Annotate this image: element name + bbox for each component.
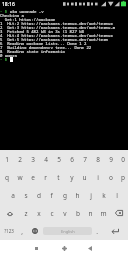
- button[interactable]: f: [45, 186, 58, 204]
- staticText: h: [75, 191, 80, 200]
- staticText: 7: [83, 155, 87, 164]
- staticText: 4: [44, 155, 48, 164]
- staticText: 5 Get:5 https://packages.termux.dev/apt/…: [0, 37, 108, 41]
- staticText: 18:16: [2, 1, 15, 8]
- button[interactable]: t: [52, 168, 65, 186]
- button[interactable]: ,: [17, 222, 27, 240]
- button[interactable]: a: [6, 186, 19, 204]
- button[interactable]: 1: [0, 150, 13, 168]
- button[interactable]: Backspace: [110, 204, 128, 222]
- staticText: Checking a: [0, 13, 24, 17]
- staticText: r: [44, 173, 47, 182]
- button[interactable]: Back: [78, 240, 128, 257]
- staticText: 0: [121, 155, 125, 164]
- button[interactable]: b: [71, 204, 84, 222]
- staticText: m: [100, 209, 107, 218]
- button[interactable]: g: [58, 186, 71, 204]
- staticText: k: [102, 191, 106, 200]
- staticText: 3 Fetched 5,482 kB in 3s (1,827 kB: [0, 29, 84, 33]
- button[interactable]: m: [97, 204, 110, 222]
- button[interactable]: Shift: [0, 204, 19, 222]
- button[interactable]: q: [0, 168, 13, 186]
- staticText: f: [50, 191, 53, 200]
- staticText: 1 Hit:2 https://packages.termux.dev/apt/…: [0, 21, 116, 25]
- button[interactable]: 4: [39, 150, 52, 168]
- button[interactable]: r: [39, 168, 52, 186]
- staticText: 4 Hit:4 https://packages.termux.dev/apt/…: [0, 33, 116, 37]
- staticText: ~ $: [0, 57, 10, 62]
- button[interactable]: s: [19, 186, 32, 204]
- staticText: 2: [18, 155, 22, 164]
- button[interactable]: Recents: [0, 240, 50, 257]
- button[interactable]: h: [71, 186, 84, 204]
- button[interactable]: 0: [117, 150, 128, 168]
- staticText: 9: [109, 155, 113, 164]
- staticText: w: [17, 173, 23, 182]
- button[interactable]: 3: [26, 150, 39, 168]
- button[interactable]: ?123: [0, 222, 17, 240]
- staticText: v: [63, 209, 67, 218]
- button[interactable]: o: [104, 168, 117, 186]
- button[interactable]: 6: [65, 150, 78, 168]
- button[interactable]: 5: [52, 150, 65, 168]
- staticText: 3: [31, 155, 35, 164]
- staticText: ?123: [4, 228, 14, 234]
- staticText: u: [82, 173, 87, 182]
- button[interactable]: 8: [91, 150, 104, 168]
- button[interactable]: d: [32, 186, 45, 204]
- button[interactable]: i: [91, 168, 104, 186]
- button[interactable]: Enter: [102, 222, 128, 240]
- staticText: l: [116, 191, 118, 200]
- staticText: 8 Reading state informatio: [0, 49, 65, 53]
- button[interactable]: 9: [104, 150, 117, 168]
- button[interactable]: Home: [50, 240, 78, 257]
- staticText: t: [57, 173, 60, 182]
- staticText: Get:1 https://package: [0, 17, 56, 21]
- staticText: 2 Get:3 https://packages.termux.dev/apt/…: [0, 25, 116, 29]
- button[interactable]: j: [84, 186, 97, 204]
- staticText: ~ $: [0, 9, 10, 13]
- staticText: d: [37, 191, 41, 200]
- button[interactable]: Change keyboard language: [27, 222, 43, 240]
- staticText: 1: [5, 155, 9, 164]
- button[interactable]: 7: [78, 150, 91, 168]
- staticText: 6: [70, 155, 74, 164]
- staticText: 5: [57, 155, 61, 164]
- staticText: 0 upgra: [0, 53, 17, 57]
- staticText: 8: [96, 155, 100, 164]
- staticText: 7 Building dependency tree... Done 22: [0, 45, 92, 49]
- button[interactable]: k: [97, 186, 110, 204]
- button[interactable]: w: [13, 168, 26, 186]
- staticText: p: [121, 173, 125, 182]
- staticText: g: [63, 191, 67, 200]
- button[interactable]: e: [26, 168, 39, 186]
- staticText: ,: [21, 227, 23, 236]
- button[interactable]: n: [84, 204, 97, 222]
- staticText: j: [90, 191, 92, 200]
- button[interactable]: x: [32, 204, 45, 222]
- staticText: c: [50, 209, 54, 218]
- button[interactable]: u: [78, 168, 91, 186]
- staticText: English: [61, 229, 75, 234]
- staticText: n: [88, 209, 93, 218]
- button[interactable]: p: [117, 168, 128, 186]
- staticText: s: [24, 191, 28, 200]
- staticText: pkg upgrade -y: [10, 9, 44, 13]
- staticText: .: [96, 227, 98, 236]
- button[interactable]: .: [92, 222, 102, 240]
- staticText: q: [5, 173, 9, 182]
- button[interactable]: Space: [43, 222, 92, 240]
- staticText: x: [37, 209, 41, 218]
- button[interactable]: c: [45, 204, 58, 222]
- staticText: e: [31, 173, 35, 182]
- staticText: b: [76, 209, 80, 218]
- staticText: y: [70, 173, 74, 182]
- staticText: i: [97, 173, 99, 182]
- button[interactable]: z: [19, 204, 32, 222]
- button[interactable]: 2: [13, 150, 26, 168]
- staticText: z: [24, 209, 28, 218]
- button[interactable]: l: [110, 186, 123, 204]
- button[interactable]: y: [65, 168, 78, 186]
- staticText: a: [11, 191, 15, 200]
- button[interactable]: v: [58, 204, 71, 222]
